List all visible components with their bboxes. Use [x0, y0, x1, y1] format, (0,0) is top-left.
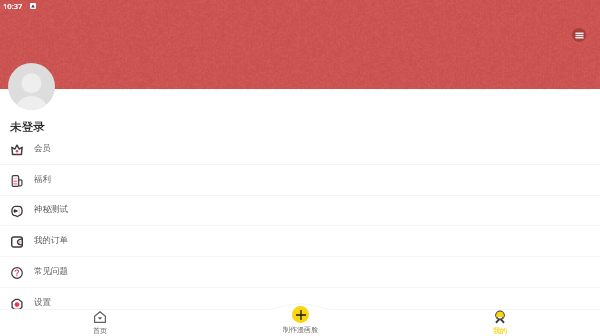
- staticText: 会员: [34, 143, 51, 154]
- button[interactable]: 常见问题: [0, 257, 600, 288]
- staticText: 神秘测试: [34, 204, 68, 215]
- button[interactable]: 神秘测试: [0, 195, 600, 226]
- button[interactable]: Create comic face: [270, 306, 330, 334]
- staticText: 我的: [493, 326, 507, 335]
- other: Create comic face: [292, 306, 309, 323]
- staticText: 未登录: [10, 120, 45, 134]
- button[interactable]: 我的: [400, 309, 600, 336]
- staticText: 设置: [34, 297, 51, 308]
- button[interactable]: 设置: [0, 288, 600, 319]
- button[interactable]: Menu: [572, 28, 586, 42]
- button[interactable]: 首页: [0, 309, 200, 336]
- button[interactable]: 会员: [0, 134, 600, 165]
- staticText: 制作漫画脸: [283, 325, 318, 334]
- staticText: 首页: [93, 326, 107, 335]
- button[interactable]: Avatar: [8, 63, 55, 110]
- staticText: 常见问题: [34, 266, 68, 277]
- button[interactable]: 福利: [0, 165, 600, 196]
- staticText: 福利: [34, 174, 51, 185]
- staticText: 我的订单: [34, 235, 68, 246]
- button[interactable]: 我的订单: [0, 226, 600, 257]
- staticText: 10:37: [3, 1, 23, 11]
